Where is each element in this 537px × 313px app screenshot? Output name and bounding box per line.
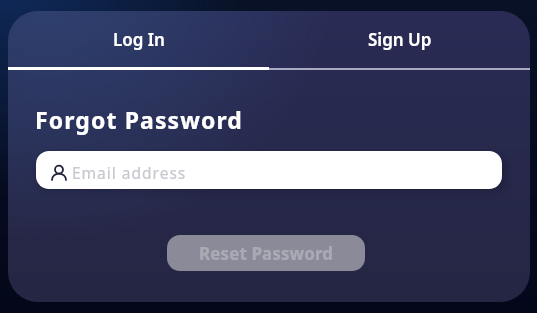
staticText: Sign Up	[368, 28, 432, 51]
staticText: Forgot Password	[35, 104, 243, 135]
button[interactable]: Email address	[36, 151, 502, 189]
button[interactable]: Log In	[8, 11, 269, 70]
staticText: Log In	[113, 28, 165, 51]
staticText: Reset Password	[199, 242, 334, 265]
staticText: Email address	[72, 162, 187, 183]
button[interactable]: Sign Up	[269, 11, 530, 70]
button[interactable]: Reset Password	[167, 235, 365, 271]
